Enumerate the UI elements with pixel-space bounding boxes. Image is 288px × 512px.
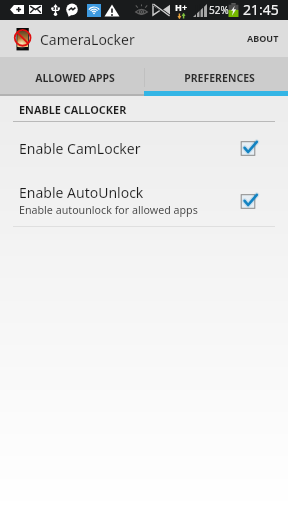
button[interactable]: ALLOWED APPS (0, 57, 144, 96)
staticText: Enable CamLocker (19, 139, 141, 158)
staticText: ALLOWED APPS (35, 71, 115, 85)
staticText: 21:45 (243, 0, 279, 19)
staticText: CameraLocker (40, 30, 135, 49)
staticText: ABOUT (247, 32, 279, 44)
staticText: ENABLE CALLOCKER (19, 102, 127, 117)
staticText: Enable AutoUnlock (19, 183, 144, 202)
staticText: PREFERENCES (184, 71, 255, 85)
button[interactable]: Enable CamLocker (0, 128, 288, 172)
staticText: H+ (175, 1, 188, 13)
staticText: Enable autounlock for allowed apps (19, 203, 198, 218)
staticText: 52% (209, 3, 229, 17)
button[interactable]: Toggle Enable CamLocker (238, 138, 258, 158)
button[interactable]: ABOUT (237, 24, 288, 52)
button[interactable]: PREFERENCES (144, 57, 288, 96)
button[interactable]: Toggle Enable AutoUnlock (238, 191, 258, 211)
button[interactable]: Enable AutoUnlock (0, 176, 288, 224)
